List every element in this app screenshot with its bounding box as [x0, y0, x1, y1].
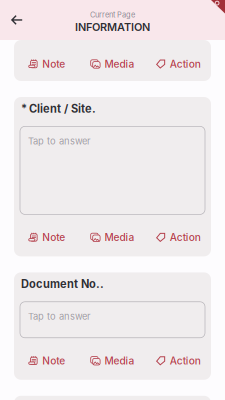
button[interactable]: Media [80, 53, 145, 75]
button[interactable]: Action [145, 226, 211, 248]
staticText: INFORMATION [75, 20, 150, 34]
staticText: Action [170, 355, 201, 367]
button[interactable]: Back [0, 0, 31, 40]
button[interactable]: Note [14, 350, 80, 372]
button[interactable]: Media [80, 350, 145, 372]
button[interactable]: Note [14, 226, 80, 248]
staticText: Client / Site. [29, 102, 96, 115]
staticText: Current Page [90, 10, 135, 19]
staticText: * [21, 102, 27, 115]
button[interactable]: Action [145, 350, 211, 372]
staticText: Note [42, 58, 65, 70]
staticText: Media [104, 355, 134, 367]
staticText: Document No.. [21, 277, 104, 291]
staticText: Tap to answer [28, 135, 91, 147]
staticText: Note [42, 355, 65, 367]
staticText: Media [104, 231, 134, 244]
staticText: Action [170, 58, 201, 70]
staticText: Tap to answer [28, 311, 91, 322]
button[interactable]: Action [145, 53, 211, 75]
button[interactable]: Tap to answer [20, 126, 205, 214]
button[interactable]: Tap to answer [20, 302, 205, 338]
button[interactable]: Note [14, 53, 80, 75]
button[interactable]: Media [80, 226, 145, 248]
staticText: Media [104, 58, 134, 70]
staticText: Note [42, 231, 65, 244]
staticText: Action [170, 231, 201, 244]
